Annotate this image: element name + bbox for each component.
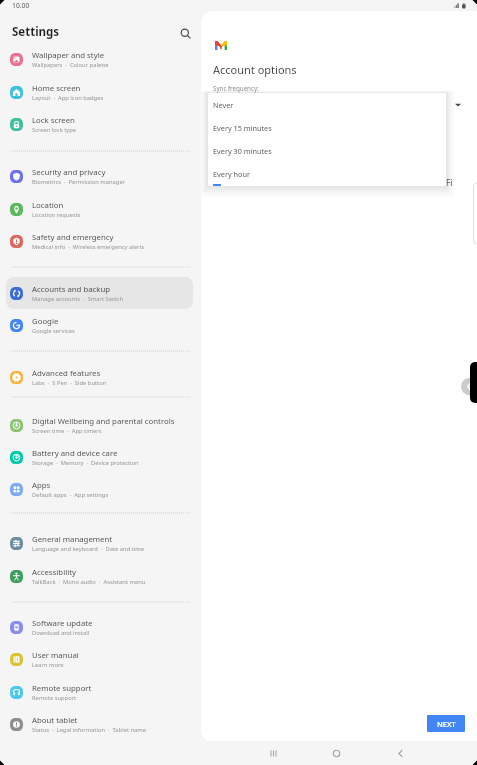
button[interactable]: General management — [0, 527, 200, 559]
staticText: User manual — [32, 650, 79, 661]
staticText: Account options — [213, 62, 297, 77]
button[interactable]: Accounts and backup — [0, 277, 200, 309]
staticText: Every hour — [213, 169, 250, 179]
button[interactable]: Wallpaper and style — [0, 43, 200, 75]
staticText: Google — [32, 316, 59, 327]
staticText: Location — [32, 200, 64, 211]
staticText: Sync frequency: — [213, 84, 259, 92]
button[interactable]: Digital Wellbeing and parental controls — [0, 409, 200, 441]
button[interactable]: Safety and emergency — [0, 225, 200, 257]
staticText: Accessibility — [32, 567, 76, 578]
staticText: Digital Wellbeing and parental controls — [32, 416, 175, 427]
staticText: Medical info · Wireless emergency alerts — [32, 243, 145, 251]
button[interactable]: Software update — [0, 611, 200, 643]
button[interactable]: Recents — [259, 741, 287, 765]
staticText: Every 30 minutes — [213, 146, 272, 156]
button[interactable]: User manual — [0, 643, 200, 675]
staticText: Default apps · App settings — [32, 491, 109, 499]
staticText: Wallpapers · Colour palette — [32, 61, 109, 69]
staticText: Download and install — [32, 629, 90, 637]
staticText: Location requests — [32, 211, 81, 219]
staticText: Screen lock type — [32, 126, 77, 134]
staticText: Every 15 minutes — [213, 123, 272, 133]
staticText: Accounts and backup — [32, 284, 111, 295]
staticText: Security and privacy — [32, 167, 106, 178]
button[interactable]: Every hour — [208, 162, 446, 185]
button[interactable]: Back — [386, 741, 414, 765]
staticText: Lock screen — [32, 115, 75, 126]
staticText: NEXT — [437, 719, 456, 729]
staticText: Language and keyboard · Date and time — [32, 545, 145, 553]
button[interactable]: Google — [0, 309, 200, 341]
staticText: Storage · Memory · Device protection — [32, 459, 139, 467]
button[interactable]: Apps — [0, 473, 200, 505]
button[interactable]: Location — [0, 193, 200, 225]
button[interactable]: Remote support — [0, 676, 200, 708]
staticText: Wallpaper and style — [32, 50, 105, 61]
button[interactable]: Every 30 minutes — [208, 139, 446, 162]
staticText: Settings — [12, 24, 60, 40]
staticText: Layout · App icon badges — [32, 94, 104, 102]
button[interactable]: Battery and device care — [0, 441, 200, 473]
button[interactable]: Never — [208, 93, 446, 116]
staticText: Labs · S Pen · Side button — [32, 379, 107, 387]
button[interactable]: Home — [322, 741, 350, 765]
staticText: Manage accounts · Smart Switch — [32, 295, 124, 303]
button[interactable]: Advanced features — [0, 361, 200, 393]
staticText: Learn more — [32, 661, 64, 669]
staticText: Biometrics · Permission manager — [32, 178, 126, 186]
button[interactable]: About tablet — [0, 708, 200, 740]
button[interactable]: Accessibility — [0, 560, 200, 592]
staticText: Advanced features — [32, 368, 101, 379]
staticText: 10.00 — [12, 1, 30, 10]
staticText: Status · Legal information · Tablet name — [32, 726, 147, 734]
button[interactable]: NEXT — [427, 715, 465, 732]
button[interactable]: Search — [175, 23, 197, 45]
staticText: Apps — [32, 480, 51, 491]
staticText: Never — [213, 100, 234, 110]
staticText: Fi — [446, 177, 453, 189]
button[interactable]: Every 15 minutes — [208, 116, 446, 139]
staticText: Battery and device care — [32, 448, 118, 459]
button[interactable]: Lock screen — [0, 108, 200, 140]
staticText: About tablet — [32, 715, 78, 726]
button[interactable]: Home screen — [0, 76, 200, 108]
staticText: Screen time · App timers — [32, 427, 102, 435]
staticText: Google services — [32, 327, 75, 335]
staticText: Software update — [32, 618, 93, 629]
staticText: Home screen — [32, 83, 81, 94]
staticText: Safety and emergency — [32, 232, 114, 243]
button[interactable]: Security and privacy — [0, 160, 200, 192]
staticText: Remote support — [32, 683, 92, 694]
staticText: General management — [32, 534, 113, 545]
staticText: Remote support — [32, 694, 77, 702]
staticText: TalkBack · Mono audio · Assistant menu — [32, 578, 146, 586]
